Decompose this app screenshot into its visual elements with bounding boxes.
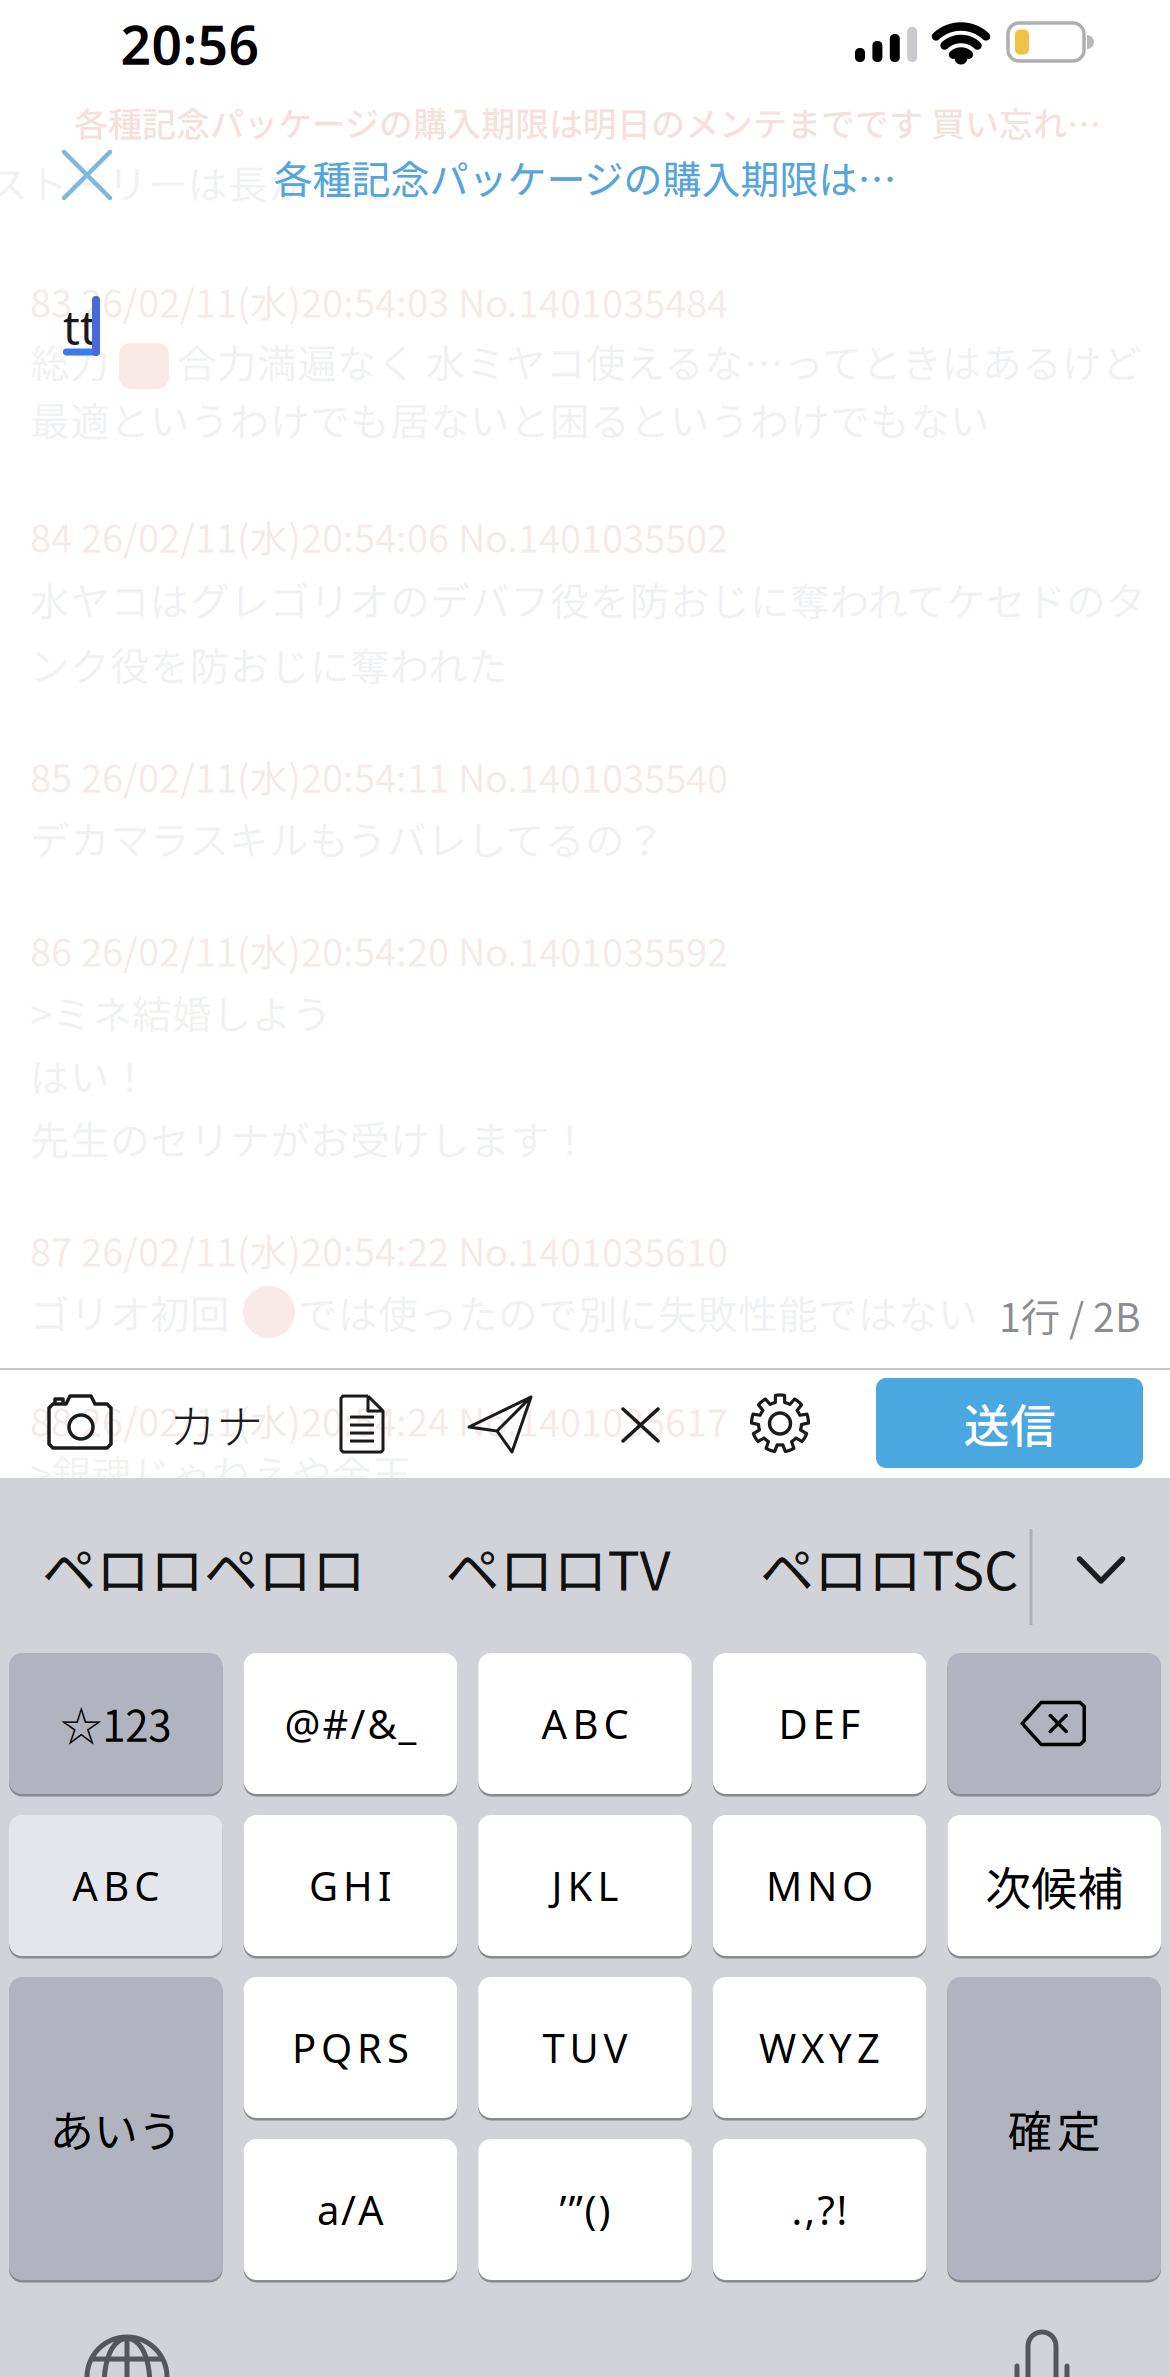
staticText: >銀魂じゃねえや金玉	[30, 1443, 412, 1501]
staticText: tt	[63, 296, 97, 358]
button[interactable]: a/A	[244, 2137, 457, 2281]
button[interactable]: Camera	[35, 1389, 125, 1459]
button[interactable]: WXYZ	[713, 1975, 926, 2119]
button[interactable]: Send	[876, 1378, 1143, 1468]
staticText: TUV	[542, 2021, 627, 2074]
staticText: 確定	[1008, 2097, 1101, 2160]
button[interactable]: Expand candidates	[0, 0, 1170, 2377]
staticText: .,?!	[792, 2183, 848, 2236]
button[interactable]: Announcement	[273, 149, 896, 205]
staticText: ABC	[72, 1859, 159, 1912]
staticText: 85 26/02/11(水)20:54:11 No.1401035540	[30, 748, 728, 803]
staticText: MNO	[766, 1859, 873, 1912]
staticText: a/A	[317, 2183, 384, 2236]
button[interactable]: DEF	[713, 1651, 926, 1795]
staticText: PQRS	[292, 2021, 409, 2074]
staticText: ペロロペロロ	[42, 1528, 366, 1606]
staticText: では使ったので別に失敗性能ではない	[298, 1283, 978, 1341]
staticText: 84 26/02/11(水)20:54:06 No.1401035502	[30, 508, 728, 563]
button[interactable]: あいう	[9, 1975, 223, 2281]
staticText: @#/&_	[284, 1697, 416, 1750]
staticText: あいう	[50, 2097, 182, 2160]
staticText: 88 26/02/11(水)20:54:24 No.1401035617	[30, 1392, 728, 1447]
button[interactable]: 次候補	[947, 1813, 1161, 1957]
staticText: 1行 / 2B	[999, 1287, 1141, 1343]
staticText: 合力満遍なく 水ミヤコ使えるな…ってときはあるけど	[177, 332, 1142, 390]
staticText: ペロロTSC	[760, 1528, 1018, 1606]
staticText: 先生のセリナがお受けします！	[30, 1109, 590, 1167]
button[interactable]: .,?!	[713, 2137, 926, 2281]
button[interactable]: GHI	[244, 1813, 457, 1957]
staticText: 87 26/02/11(水)20:54:22 No.1401035610	[30, 1222, 728, 1277]
button[interactable]: Close	[57, 145, 117, 205]
staticText: JKL	[551, 1859, 618, 1912]
button[interactable]: ☆123	[9, 1651, 223, 1795]
staticText: >ミネ結婚しよう	[30, 983, 332, 1041]
staticText: ゴリオ初回	[30, 1283, 230, 1341]
staticText: カナ	[169, 1390, 263, 1458]
staticText: 83 26/02/11(水)20:54:03 No.1401035484	[30, 273, 728, 328]
button[interactable]: JKL	[478, 1813, 692, 1957]
button[interactable]: TUV	[478, 1975, 692, 2119]
staticText: 総力	[30, 332, 110, 390]
button[interactable]: MNO	[713, 1813, 926, 1957]
staticText: はい！	[30, 1046, 150, 1104]
staticText: ペロロTV	[445, 1528, 670, 1606]
staticText: ABC	[541, 1697, 628, 1750]
staticText: 86 26/02/11(水)20:54:20 No.1401035592	[30, 922, 728, 977]
staticText: GHI	[309, 1859, 392, 1912]
button[interactable]: ABC	[478, 1651, 692, 1795]
button[interactable]: PQRS	[244, 1975, 457, 2119]
staticText: 各種記念パッケージの購入期限は…	[273, 149, 896, 205]
staticText: 各種記念パッケージの購入期限は明日のメンテまでです 買い忘れ…	[74, 97, 1101, 147]
staticText: 水ヤコはグレゴリオのデバフ役を防おじに奪われてケセドのタ	[30, 570, 1146, 628]
staticText: ストーリーは長かった	[0, 153, 388, 211]
staticText: 送信	[963, 1390, 1055, 1456]
button[interactable]: ペロロTV	[0, 0, 1170, 2377]
button[interactable]: @#/&_	[244, 1651, 457, 1795]
button[interactable]: Delete	[947, 1651, 1161, 1795]
staticText: 次候補	[985, 1852, 1123, 1919]
button[interactable]: ABC	[9, 1813, 223, 1957]
button[interactable]: ペロロTSC	[0, 0, 1170, 2377]
staticText: WXYZ	[759, 2021, 880, 2074]
button[interactable]: Send to	[461, 1389, 541, 1459]
button[interactable]: ’”()	[478, 2137, 692, 2281]
staticText: ンク役を防おじに奪われた	[30, 635, 508, 693]
staticText: 最適というわけでも居ないと困るというわけでもない	[30, 390, 990, 448]
button[interactable]: Kana	[169, 1390, 263, 1458]
button[interactable]: Next keyboard	[67, 2337, 187, 2377]
staticText: デカマラスキルもうバレしてるの？	[30, 809, 665, 867]
staticText: 20:56	[120, 9, 259, 79]
staticText: ’”()	[559, 2183, 610, 2236]
button[interactable]: 確定	[947, 1975, 1161, 2281]
button[interactable]: ペロロペロロ	[0, 0, 1170, 2377]
staticText: DEF	[779, 1697, 861, 1750]
staticText: ☆123	[60, 1693, 171, 1754]
button[interactable]: Dictate	[992, 2332, 1092, 2377]
button[interactable]: Settings	[735, 1378, 825, 1468]
button[interactable]: Drafts	[332, 1389, 392, 1459]
button[interactable]: Clear	[610, 1394, 670, 1454]
